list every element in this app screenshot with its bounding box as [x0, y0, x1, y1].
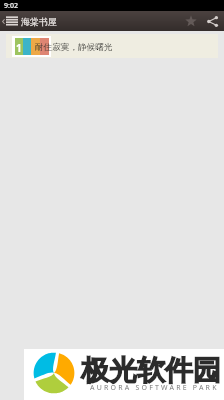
staticText: AURORA SOFTWARE PARK	[90, 383, 219, 393]
button[interactable]: Add to favorites	[180, 11, 202, 31]
staticText: 极光软件园	[81, 353, 221, 388]
button[interactable]: 1	[6, 34, 218, 58]
button[interactable]: Open navigation menu	[0, 11, 20, 31]
staticText: 9:02	[4, 1, 18, 11]
staticText: 耐住寂寞，静候曙光	[35, 42, 113, 53]
staticText: 1	[16, 41, 22, 55]
button[interactable]: Share	[202, 11, 222, 31]
staticText: 海棠书屋	[21, 16, 57, 27]
